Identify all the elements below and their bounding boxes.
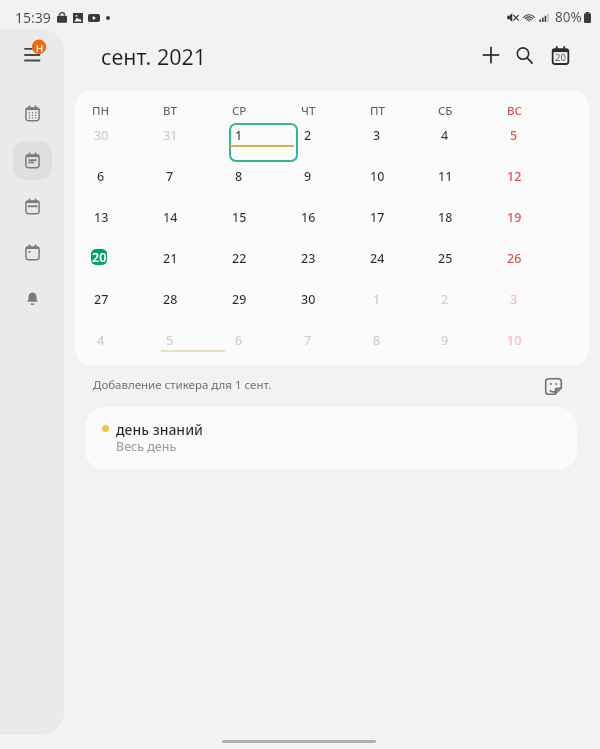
button[interactable]: сент. 2021 [101,42,207,71]
staticText: 20 [92,249,107,265]
button[interactable]: 4 [435,123,504,164]
button[interactable]: 7 [160,164,229,205]
button[interactable]: 7 [298,328,367,366]
button[interactable]: 30 [91,123,160,164]
staticText: 5 [510,127,518,144]
staticText: ВТ [163,103,177,117]
staticText: 1 [373,291,381,308]
button[interactable]: Add sticker [537,370,569,402]
staticText: 10 [507,332,522,349]
button[interactable]: Add event [473,37,509,73]
staticText: 1 [235,127,243,144]
button[interactable]: 29 [229,287,298,328]
button[interactable]: 5 [160,328,229,366]
staticText: 15 [232,209,247,226]
staticText: ЧТ [301,103,316,117]
button[interactable]: 28 [160,287,229,328]
button[interactable]: Agenda view [13,141,52,180]
button[interactable]: 23 [298,246,367,287]
staticText: 6 [97,168,105,185]
button[interactable]: 15 [229,205,298,246]
staticText: 16 [301,209,316,226]
staticText: ВС [507,103,522,117]
staticText: 80% [555,8,582,26]
staticText: 23 [301,250,316,267]
staticText: 4 [441,127,449,144]
button[interactable]: 1 [229,123,298,164]
button[interactable]: 20 [91,246,160,287]
staticText: 2 [441,291,449,308]
staticText: 13 [94,209,109,226]
button[interactable]: 11 [435,164,504,205]
button[interactable]: 31 [160,123,229,164]
button[interactable]: 12 [504,164,573,205]
button[interactable]: 26 [504,246,573,287]
button[interactable]: 10 [504,328,573,366]
staticText: 7 [166,168,174,185]
button[interactable]: 9 [435,328,504,366]
staticText: 28 [163,291,178,308]
button[interactable]: 13 [91,205,160,246]
button[interactable]: 3 [367,123,436,164]
button[interactable]: Go to today [542,37,578,73]
staticText: 2 [304,127,312,144]
staticText: Весь день [116,438,177,455]
button[interactable]: 19 [504,205,573,246]
button[interactable]: 9 [298,164,367,205]
staticText: ПТ [370,103,385,117]
button[interactable]: 17 [367,205,436,246]
staticText: 22 [232,250,247,267]
button[interactable]: 21 [160,246,229,287]
button[interactable]: 18 [435,205,504,246]
staticText: 4 [97,332,105,349]
staticText: 31 [163,127,178,144]
staticText: 18 [438,209,453,226]
staticText: 11 [438,168,453,185]
button[interactable]: 27 [91,287,160,328]
button[interactable]: день знаний [85,407,577,470]
staticText: 19 [507,209,522,226]
staticText: 27 [94,291,109,308]
button[interactable]: Reminders [13,279,52,318]
button[interactable]: Day view [13,233,52,272]
button[interactable]: 2 [298,123,367,164]
button[interactable]: 16 [298,205,367,246]
staticText: 30 [301,291,316,308]
staticText: 15:39 [15,8,51,27]
button[interactable]: Open navigation menu [8,29,56,77]
button[interactable]: 8 [367,328,436,366]
staticText: 14 [163,209,178,226]
staticText: 5 [166,332,174,349]
staticText: 24 [370,250,385,267]
button[interactable]: 4 [91,328,160,366]
button[interactable]: 6 [229,328,298,366]
staticText: 26 [507,250,522,267]
button[interactable]: 5 [504,123,573,164]
button[interactable]: 10 [367,164,436,205]
button[interactable]: Search [506,37,542,73]
button[interactable]: 24 [367,246,436,287]
staticText: 17 [370,209,385,226]
button[interactable]: Month view [13,94,52,133]
button[interactable]: Week view [13,187,52,226]
button[interactable]: 30 [298,287,367,328]
staticText: 30 [94,127,109,144]
staticText: 29 [232,291,247,308]
staticText: 8 [373,332,381,349]
button[interactable]: 8 [229,164,298,205]
button[interactable]: 3 [504,287,573,328]
button[interactable]: 14 [160,205,229,246]
staticText: 3 [510,291,518,308]
staticText: СР [232,103,247,117]
staticText: ПН [92,103,110,117]
staticText: 25 [438,250,453,267]
staticText: 9 [441,332,449,349]
button[interactable]: 2 [435,287,504,328]
staticText: 8 [235,168,243,185]
staticText: 12 [507,168,522,185]
button[interactable]: 25 [435,246,504,287]
staticText: СБ [438,103,453,117]
button[interactable]: 22 [229,246,298,287]
button[interactable]: 6 [91,164,160,205]
